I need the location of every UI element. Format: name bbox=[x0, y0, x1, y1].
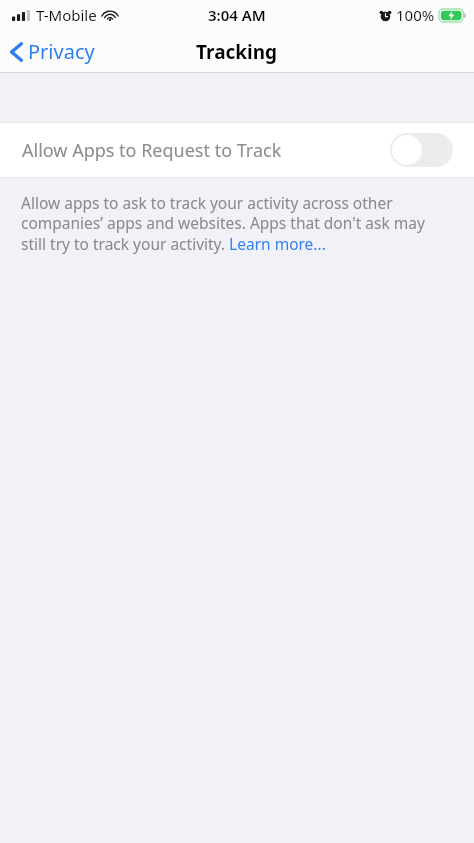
staticText: Allow Apps to Request to Track bbox=[22, 138, 390, 163]
button[interactable]: Allow Apps to Request to Track toggle, o… bbox=[390, 133, 453, 167]
staticText: 3:04 AM bbox=[208, 5, 266, 25]
staticText: 100% bbox=[396, 5, 435, 25]
staticText: Privacy bbox=[28, 38, 95, 65]
button[interactable]: Privacy bbox=[0, 34, 105, 69]
button[interactable]: Allow Apps to Request to Track bbox=[0, 123, 474, 177]
staticText: T-Mobile bbox=[36, 5, 97, 25]
staticText: Tracking bbox=[196, 39, 278, 65]
staticText: Allow apps to ask to track your activity… bbox=[21, 192, 452, 255]
